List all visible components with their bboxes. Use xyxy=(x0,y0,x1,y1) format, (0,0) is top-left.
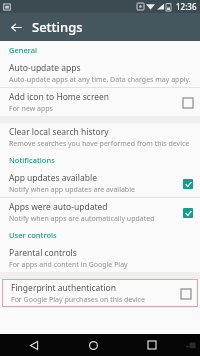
button[interactable]: Clear local search history xyxy=(0,123,200,151)
button[interactable]: Recent apps xyxy=(143,336,161,354)
staticText: Auto-update apps at any time. Data charg… xyxy=(9,75,191,85)
button[interactable]: Back xyxy=(25,336,43,354)
button[interactable]: Add icon to Home screen xyxy=(0,88,200,116)
button[interactable]: Checked xyxy=(182,178,193,189)
button[interactable]: Home xyxy=(84,336,102,354)
staticText: App updates available xyxy=(9,172,97,184)
button[interactable]: Unchecked xyxy=(180,288,191,299)
button[interactable]: Apps were auto-updated xyxy=(0,198,200,226)
staticText: Add icon to Home screen xyxy=(9,91,110,103)
staticText: General xyxy=(9,45,38,55)
staticText: Remove searches you have performed from … xyxy=(9,139,190,149)
staticText: Auto-update apps xyxy=(9,62,81,74)
button[interactable]: Fingerprint authentication xyxy=(2,279,198,307)
staticText: 12:36 xyxy=(176,1,197,12)
button[interactable]: App updates available xyxy=(0,169,200,197)
button[interactable]: Keyboard indicator xyxy=(184,338,198,352)
staticText: Fingerprint authentication xyxy=(11,282,117,294)
staticText: For new apps xyxy=(9,104,53,114)
staticText: Parental controls xyxy=(9,247,77,259)
staticText: Notifications xyxy=(9,155,55,165)
button[interactable]: Auto-update apps xyxy=(0,59,200,87)
staticText: Clear local search history xyxy=(9,126,109,138)
button[interactable]: Parental controls xyxy=(0,244,200,272)
staticText: For Google Play purchases on this device xyxy=(11,295,145,305)
staticText: For apps and content in Google Play xyxy=(9,260,128,270)
staticText: Notify when app updates are available xyxy=(9,185,135,195)
button[interactable]: Back xyxy=(6,17,26,37)
staticText: Settings xyxy=(32,18,83,36)
staticText: User controls xyxy=(9,230,57,240)
button[interactable]: Checked xyxy=(182,207,193,218)
staticText: Notify when apps are automatically updat… xyxy=(9,214,155,224)
button[interactable]: Unchecked xyxy=(182,97,193,108)
staticText: Apps were auto-updated xyxy=(9,201,108,213)
